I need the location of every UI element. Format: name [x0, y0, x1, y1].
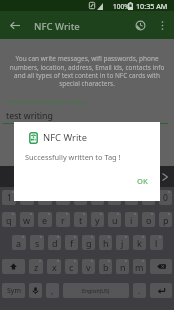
staticText: n: [120, 261, 126, 273]
button[interactable]: q: [2, 212, 16, 227]
button[interactable]: Voice input: [29, 283, 42, 298]
button[interactable]: z: [29, 259, 43, 274]
button[interactable]: Back: [4, 15, 25, 36]
staticText: c: [69, 261, 74, 273]
button[interactable]: l: [150, 235, 163, 250]
staticText: b: [103, 261, 109, 273]
button[interactable]: c: [65, 259, 78, 274]
button[interactable]: History: [130, 15, 151, 36]
button[interactable]: 9: [142, 190, 155, 205]
staticText: 7: [112, 192, 117, 204]
staticText: You can write messages, wifi passwords, …: [8, 54, 166, 87]
button[interactable]: Enter: [150, 283, 172, 298]
staticText: 3: [43, 192, 48, 204]
staticText: i: [130, 214, 133, 226]
button[interactable]: 2: [20, 190, 34, 205]
staticText: m: [135, 261, 144, 273]
staticText: NFC Write: [34, 20, 80, 33]
staticText: 1: [7, 192, 12, 204]
button[interactable]: i: [125, 212, 138, 227]
button[interactable]: j: [116, 235, 129, 250]
staticText: d: [52, 237, 58, 249]
staticText: w: [23, 214, 31, 226]
staticText: s: [35, 237, 40, 249]
button[interactable]: v: [82, 259, 95, 274]
button[interactable]: e: [38, 212, 52, 227]
button[interactable]: ,: [46, 283, 59, 298]
staticText: 8: [129, 192, 134, 204]
button[interactable]: s: [30, 235, 44, 250]
staticText: 4: [61, 192, 66, 204]
button[interactable]: More options: [152, 15, 173, 36]
button[interactable]: k: [133, 235, 146, 250]
button[interactable]: a: [12, 235, 26, 250]
staticText: f: [70, 237, 74, 249]
button[interactable]: f: [65, 235, 78, 250]
staticText: Successfully written to Tag !: [25, 152, 121, 162]
staticText: e: [42, 214, 48, 226]
staticText: OK: [137, 176, 148, 186]
button[interactable]: h: [99, 235, 112, 250]
staticText: y: [95, 214, 100, 226]
button[interactable]: u: [108, 212, 121, 227]
button[interactable]: .: [133, 283, 146, 298]
button[interactable]: t: [74, 212, 87, 227]
staticText: g: [86, 237, 92, 249]
button[interactable]: y: [91, 212, 104, 227]
button[interactable]: Backspace: [150, 259, 172, 274]
staticText: 0: [163, 192, 168, 204]
other: More suggestions: [162, 173, 168, 181]
staticText: p: [163, 214, 169, 226]
staticText: k: [137, 237, 142, 249]
staticText: 100%: [113, 2, 130, 11]
button[interactable]: g: [82, 235, 95, 250]
staticText: r: [61, 214, 65, 226]
button[interactable]: x: [47, 259, 61, 274]
staticText: Enter the text to Write on NFC: [7, 98, 86, 106]
staticText: a: [16, 237, 22, 249]
staticText: o: [146, 214, 152, 226]
staticText: 10:35 AM: [136, 1, 168, 11]
staticText: NFC Write: [43, 131, 88, 144]
button[interactable]: b: [99, 259, 112, 274]
staticText: l: [155, 237, 158, 249]
button[interactable]: 1: [2, 190, 16, 205]
staticText: Sym: [7, 286, 21, 296]
button[interactable]: 5: [74, 190, 87, 205]
button[interactable]: p: [159, 212, 172, 227]
button[interactable]: 8: [125, 190, 138, 205]
staticText: u: [112, 214, 118, 226]
staticText: 6: [95, 192, 100, 204]
staticText: 9: [146, 192, 151, 204]
button[interactable]: w: [20, 212, 34, 227]
button[interactable]: Sym: [2, 283, 25, 298]
staticText: ,: [51, 285, 54, 296]
button[interactable]: m: [133, 259, 146, 274]
staticText: test writing: [6, 110, 53, 122]
staticText: t: [79, 214, 83, 226]
button[interactable]: OK: [129, 170, 156, 192]
button[interactable]: n: [116, 259, 129, 274]
button[interactable]: o: [142, 212, 155, 227]
staticText: h: [103, 237, 109, 249]
staticText: j: [121, 237, 124, 249]
button[interactable]: 3: [38, 190, 52, 205]
button[interactable]: Shift: [2, 259, 25, 274]
staticText: .: [138, 285, 141, 296]
staticText: v: [86, 261, 91, 273]
staticText: z: [34, 261, 39, 273]
staticText: 5: [78, 192, 83, 204]
staticText: q: [6, 214, 12, 226]
button[interactable]: 6: [91, 190, 104, 205]
staticText: English(US): [82, 287, 110, 294]
button[interactable]: 7: [108, 190, 121, 205]
button[interactable]: 4: [56, 190, 70, 205]
staticText: 2: [25, 192, 30, 204]
button[interactable]: r: [56, 212, 70, 227]
button[interactable]: 0: [159, 190, 172, 205]
staticText: x: [52, 261, 57, 273]
button[interactable]: d: [48, 235, 61, 250]
button[interactable]: English(US): [63, 283, 129, 298]
